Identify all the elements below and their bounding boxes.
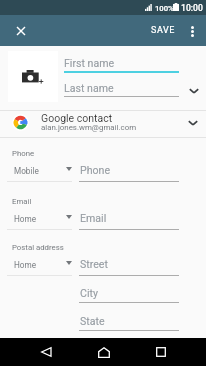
button[interactable]: [64, 82, 179, 98]
button[interactable]: Expand name fields: [182, 80, 203, 98]
staticText: Phone: [12, 149, 35, 158]
staticText: Postal address: [12, 243, 64, 252]
staticText: Home: [14, 260, 37, 270]
button[interactable]: Home: [90, 338, 118, 366]
staticText: State: [80, 315, 105, 327]
button[interactable]: Close: [9, 19, 32, 42]
staticText: Last name: [64, 82, 114, 94]
button[interactable]: SAVE: [151, 15, 175, 46]
button[interactable]: [79, 286, 179, 304]
staticText: Phone: [80, 164, 111, 176]
button[interactable]: [79, 256, 179, 274]
button[interactable]: Phone type: [6, 162, 72, 182]
staticText: Mobile: [14, 166, 39, 176]
button[interactable]: More options: [182, 21, 202, 41]
staticText: 10:00: [181, 3, 203, 13]
staticText: Street: [80, 258, 108, 270]
button[interactable]: Recent apps: [147, 338, 175, 366]
staticText: alan.jones.wm@gmail.com: [41, 123, 137, 132]
button[interactable]: [79, 314, 179, 332]
button[interactable]: Postal address type: [6, 256, 72, 276]
staticText: 100%: [155, 4, 174, 13]
button[interactable]: Google contact: [0, 111, 206, 137]
button[interactable]: [64, 56, 179, 73]
staticText: SAVE: [151, 25, 175, 36]
staticText: Email: [80, 212, 107, 224]
staticText: City: [80, 287, 98, 299]
button[interactable]: Email type: [6, 210, 72, 230]
staticText: Google contact: [41, 112, 113, 124]
staticText: Home: [14, 214, 37, 224]
button[interactable]: Back: [32, 338, 60, 366]
button[interactable]: Add contact photo: [8, 51, 58, 102]
button[interactable]: [79, 210, 179, 228]
staticText: First name: [64, 57, 115, 69]
staticText: Email: [12, 197, 32, 206]
button[interactable]: [79, 162, 179, 180]
